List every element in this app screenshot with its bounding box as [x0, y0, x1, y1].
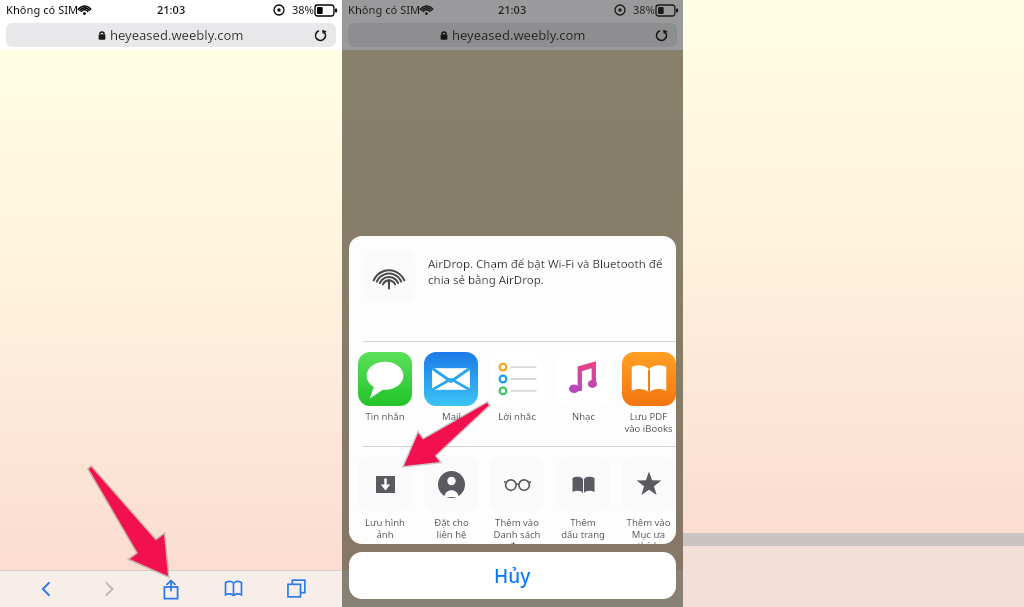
button[interactable]: Thêm vào Danh sách đọc — [489, 457, 545, 544]
staticText: Thêm vào Mục ưa thích — [621, 516, 676, 544]
button[interactable]: Hủy — [349, 552, 676, 599]
button[interactable]: Forward — [85, 570, 133, 607]
staticText: heyeased.weebly.com — [452, 26, 586, 44]
button[interactable]: Mail — [423, 352, 479, 423]
staticText: Tin nhắn — [365, 410, 405, 423]
button[interactable]: heyeased.weebly.com — [348, 23, 677, 47]
button[interactable]: Lưu PDF vào iBooks — [621, 352, 676, 434]
button[interactable]: Nhạc — [555, 352, 611, 423]
other: Reload — [314, 29, 327, 42]
staticText: Lưu PDF vào iBooks — [624, 410, 673, 434]
staticText: 21:03 — [498, 2, 527, 17]
staticText: Lưu hình ảnh — [357, 516, 413, 540]
button[interactable]: Đặt cho liên hệ — [423, 457, 479, 540]
staticText: Hủy — [494, 563, 531, 589]
staticText: Thêm vào Danh sách đọc — [489, 516, 545, 544]
button[interactable]: Thêm vào Mục ưa thích — [621, 457, 676, 544]
button[interactable]: Bookmarks — [209, 570, 257, 607]
staticText: 21:03 — [157, 2, 186, 17]
button[interactable]: Lời nhắc — [489, 352, 545, 423]
button[interactable]: heyeased.weebly.com — [6, 23, 336, 47]
staticText: Nhạc — [572, 410, 595, 423]
staticText: heyeased.weebly.com — [110, 26, 244, 44]
button[interactable]: Tabs — [272, 570, 320, 607]
button[interactable]: Tin nhắn — [357, 352, 413, 423]
staticText: AirDrop. Chạm để bật Wi-Fi và Bluetooth … — [428, 256, 666, 287]
button[interactable]: Back — [22, 570, 70, 607]
button[interactable]: Lưu hình ảnh — [357, 457, 413, 540]
staticText: Lời nhắc — [498, 410, 536, 423]
staticText: Không có SIM — [348, 2, 421, 17]
button[interactable]: AirDrop. Chạm để bật Wi-Fi và Bluetooth … — [363, 250, 666, 302]
staticText: Thêm dấu trang — [561, 516, 605, 540]
other: Reload — [655, 29, 668, 42]
staticText: Mail — [442, 410, 461, 423]
staticText: 38% — [633, 2, 655, 17]
staticText: 38% — [292, 2, 314, 17]
staticText: Đặt cho liên hệ — [434, 516, 469, 540]
button[interactable]: Thêm dấu trang — [555, 457, 611, 540]
staticText: Không có SIM — [6, 2, 79, 17]
button[interactable]: Share — [147, 570, 195, 607]
